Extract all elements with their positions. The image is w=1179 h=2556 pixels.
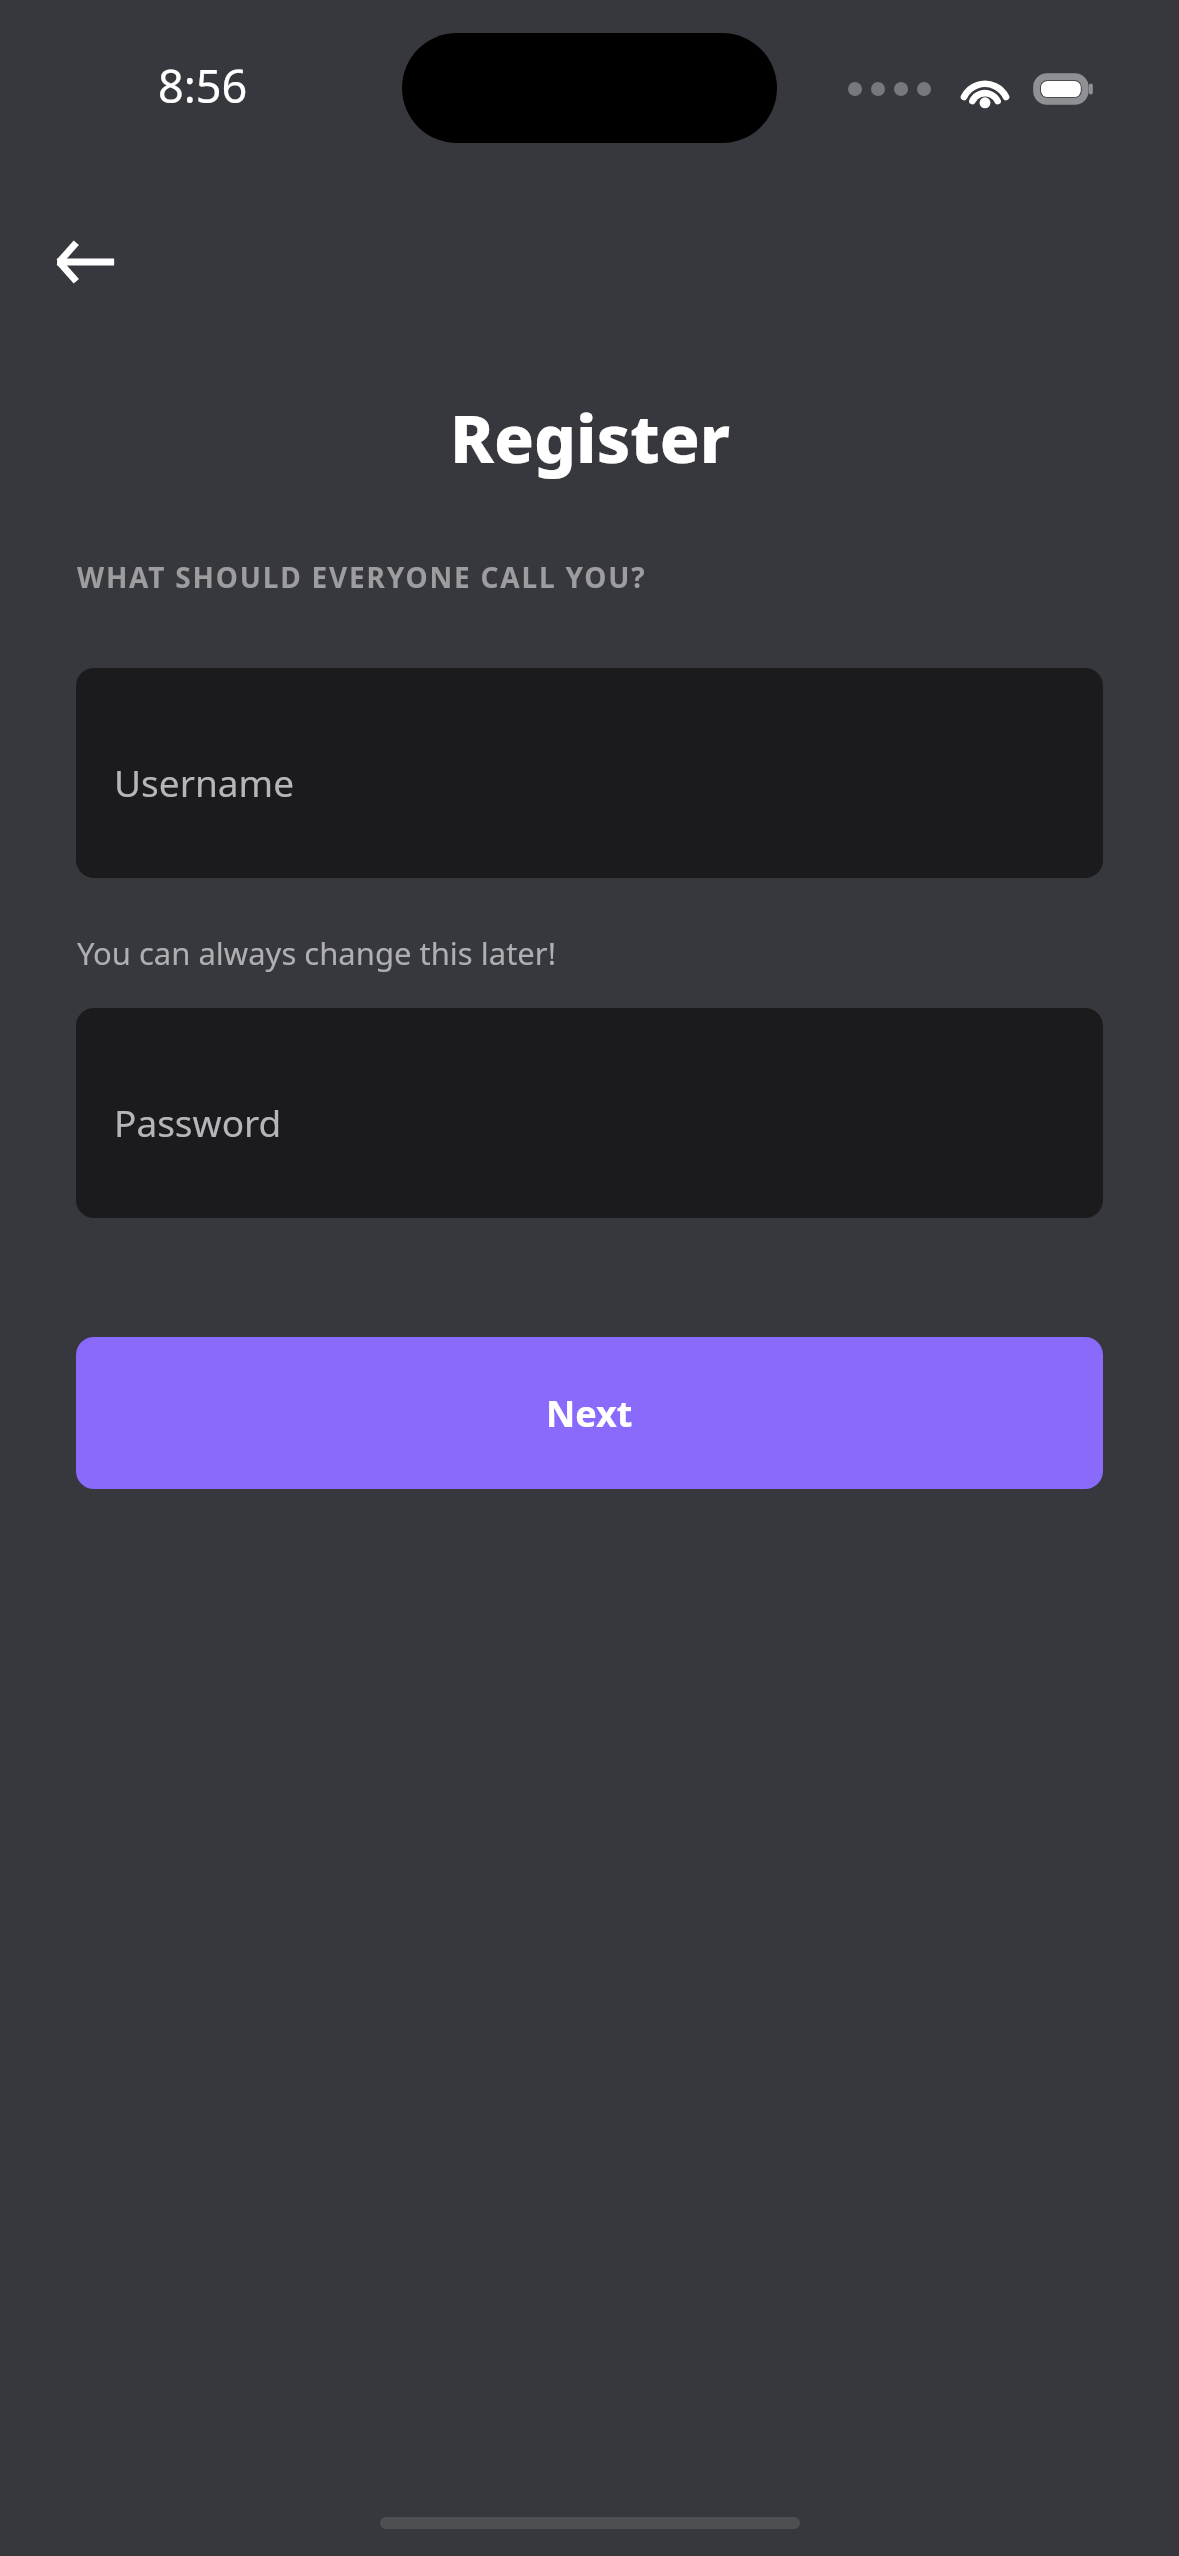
staticText: 8:56	[158, 55, 248, 116]
staticText: You can always change this later!	[77, 932, 556, 974]
staticText: Password	[114, 1097, 282, 1147]
button[interactable]: Next	[76, 1337, 1103, 1489]
staticText: Register	[450, 392, 730, 482]
staticText: Username	[114, 757, 295, 807]
staticText: Next	[546, 1389, 633, 1438]
button[interactable]: Username	[76, 668, 1103, 878]
button[interactable]: Back	[20, 197, 150, 327]
button[interactable]: Password	[76, 1008, 1103, 1218]
staticText: WHAT SHOULD EVERYONE CALL YOU?	[77, 558, 647, 596]
